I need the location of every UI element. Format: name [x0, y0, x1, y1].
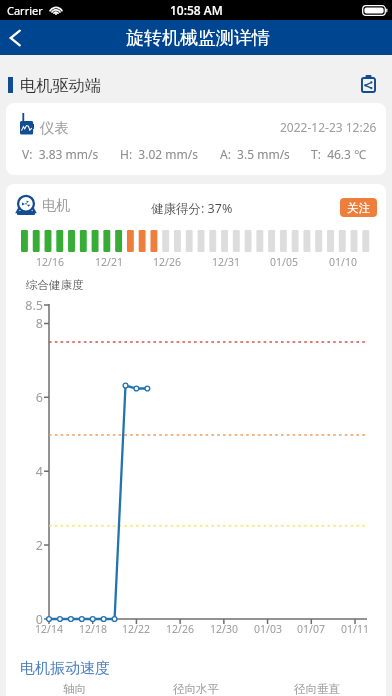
- staticText: 6: [6, 389, 43, 406]
- staticText: 12/21: [87, 255, 131, 269]
- button[interactable]: Share report: [355, 71, 381, 97]
- button[interactable]: 关注: [340, 198, 377, 217]
- button[interactable]: Back: [0, 20, 34, 55]
- staticText: 2: [6, 537, 43, 554]
- staticText: 12/18: [71, 622, 115, 636]
- button[interactable]: 仪表: [6, 103, 386, 175]
- staticText: 01/11: [333, 622, 377, 636]
- staticText: Carrier: [7, 3, 43, 18]
- staticText: 电机振动速度: [20, 659, 110, 678]
- button[interactable]: 径向水平: [135, 682, 256, 696]
- staticText: 轴向: [63, 682, 86, 696]
- staticText: T: 46.3 ℃: [311, 146, 366, 162]
- staticText: 12/30: [202, 622, 246, 636]
- staticText: 0: [6, 611, 43, 628]
- staticText: A: 3.5 mm/s: [220, 146, 290, 162]
- staticText: 12/22: [114, 622, 158, 636]
- staticText: 径向垂直: [294, 682, 340, 696]
- staticText: 8: [6, 315, 43, 332]
- staticText: 12/26: [158, 622, 202, 636]
- staticText: 01/03: [246, 622, 290, 636]
- staticText: H: 3.02 mm/s: [120, 146, 198, 162]
- staticText: 01/07: [289, 622, 333, 636]
- staticText: 4: [6, 463, 43, 480]
- staticText: 01/10: [321, 255, 365, 269]
- staticText: 2022-12-23 12:26: [280, 119, 377, 135]
- staticText: 仪表: [40, 119, 69, 137]
- staticText: 12/16: [28, 255, 72, 269]
- staticText: 旋转机械监测详情: [126, 27, 270, 50]
- button[interactable]: 轴向: [13, 682, 135, 696]
- button[interactable]: 径向垂直: [256, 682, 377, 696]
- staticText: 综合健康度: [26, 278, 84, 292]
- staticText: 电机: [42, 197, 70, 215]
- staticText: 径向水平: [173, 682, 219, 696]
- staticText: 健康得分: 37%: [151, 200, 233, 217]
- staticText: V: 3.83 mm/s: [22, 146, 99, 162]
- staticText: 电机驱动端: [20, 75, 101, 95]
- staticText: 10:58 AM: [170, 2, 223, 18]
- button[interactable]: 电机: [17, 196, 70, 216]
- staticText: 8.5: [6, 297, 43, 314]
- staticText: 12/14: [27, 622, 71, 636]
- staticText: 12/31: [204, 255, 248, 269]
- staticText: 01/05: [262, 255, 306, 269]
- staticText: 12/26: [145, 255, 189, 269]
- staticText: 关注: [347, 201, 370, 215]
